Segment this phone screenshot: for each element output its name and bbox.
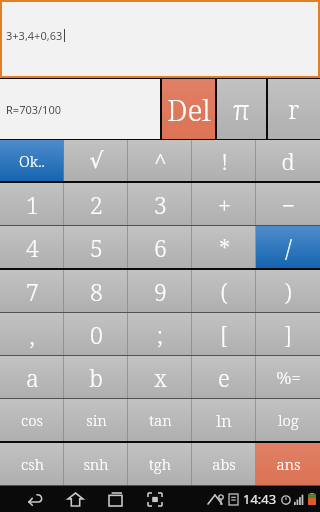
staticText: csh [21, 454, 44, 474]
staticText: R=703/100 [6, 102, 61, 117]
staticText: ln [216, 409, 232, 432]
button[interactable]: ln [192, 399, 256, 441]
button[interactable]: tgh [128, 443, 192, 485]
button[interactable]: / [256, 226, 320, 268]
button[interactable]: Result [0, 79, 160, 139]
button[interactable]: b [64, 356, 128, 398]
staticText: 3+3,4+0,63 [6, 28, 63, 43]
button[interactable]: 2 [64, 183, 128, 225]
staticText: [ [220, 319, 228, 350]
button[interactable]: Recent apps [102, 487, 128, 511]
button[interactable]: ! [192, 140, 256, 181]
button[interactable]: ] [256, 313, 320, 355]
button[interactable]: , [0, 313, 64, 355]
button[interactable]: abs [192, 443, 256, 485]
staticText: ^ [154, 146, 167, 176]
staticText: cos [21, 410, 43, 430]
button[interactable]: 5 [64, 226, 128, 268]
button[interactable]: 6 [128, 226, 192, 268]
button[interactable]: Del [162, 79, 215, 139]
button[interactable]: 3 [128, 183, 192, 225]
button[interactable]: 9 [128, 270, 192, 312]
button[interactable]: 1 [0, 183, 64, 225]
staticText: , [29, 319, 35, 350]
staticText: Ok.. [19, 151, 45, 171]
staticText: ) [284, 276, 292, 307]
staticText: %= [276, 366, 301, 389]
staticText: π [233, 91, 250, 128]
staticText: r [288, 92, 300, 126]
staticText: x [154, 362, 167, 393]
staticText: 9 [154, 276, 167, 307]
button[interactable]: csh [0, 443, 64, 485]
button[interactable]: ( [192, 270, 256, 312]
button[interactable]: + [192, 183, 256, 225]
staticText: 8 [90, 276, 103, 307]
button[interactable]: 7 [0, 270, 64, 312]
staticText: 4 [26, 232, 39, 263]
staticText: 1 [26, 189, 39, 220]
staticText: ; [157, 319, 163, 350]
staticText: log [278, 410, 299, 430]
button[interactable]: r [268, 79, 320, 139]
button[interactable]: x [128, 356, 192, 398]
button[interactable]: ^ [128, 140, 192, 181]
staticText: 7 [26, 276, 39, 307]
staticText: √ [89, 148, 104, 174]
button[interactable]: d [256, 140, 320, 181]
button[interactable]: Home [62, 487, 88, 511]
staticText: 2 [90, 189, 103, 220]
staticText: abs [212, 454, 236, 474]
button[interactable]: Hide keyboard [202, 487, 228, 511]
staticText: 14:43 [243, 490, 277, 508]
staticText: tan [149, 410, 172, 430]
button[interactable]: snh [64, 443, 128, 485]
staticText: Del [167, 90, 211, 129]
staticText: / [285, 232, 292, 263]
staticText: snh [83, 454, 109, 474]
button[interactable]: sin [64, 399, 128, 441]
staticText: − [281, 189, 295, 220]
button[interactable]: e [192, 356, 256, 398]
staticText: 0 [90, 319, 103, 350]
staticText: e [218, 362, 230, 393]
button[interactable]: %= [256, 356, 320, 398]
staticText: 5 [90, 232, 103, 263]
staticText: ( [220, 276, 228, 307]
button[interactable]: log [256, 399, 320, 441]
button[interactable]: cos [0, 399, 64, 441]
staticText: ans [276, 454, 301, 474]
staticText: ] [284, 319, 292, 350]
button[interactable]: Expression input [0, 0, 320, 78]
staticText: * [219, 232, 230, 263]
button[interactable]: Ok.. [0, 140, 64, 181]
button[interactable]: Screenshot [142, 487, 168, 511]
button[interactable]: 8 [64, 270, 128, 312]
staticText: sin [86, 410, 107, 430]
staticText: tgh [149, 454, 171, 474]
button[interactable]: ; [128, 313, 192, 355]
button[interactable]: π [217, 79, 266, 139]
button[interactable]: [ [192, 313, 256, 355]
button[interactable]: ans [256, 443, 320, 485]
button[interactable]: ) [256, 270, 320, 312]
staticText: a [26, 362, 39, 393]
button[interactable]: 4 [0, 226, 64, 268]
button[interactable]: − [256, 183, 320, 225]
staticText: d [281, 146, 295, 176]
button[interactable]: tan [128, 399, 192, 441]
button[interactable]: * [192, 226, 256, 268]
button[interactable]: √ [64, 140, 128, 181]
button[interactable]: a [0, 356, 64, 398]
staticText: ! [221, 146, 228, 176]
staticText: b [89, 362, 103, 393]
staticText: + [218, 189, 231, 220]
staticText: 6 [154, 232, 167, 263]
staticText: 3 [154, 189, 167, 220]
button[interactable]: Back [22, 487, 48, 511]
button[interactable]: 0 [64, 313, 128, 355]
